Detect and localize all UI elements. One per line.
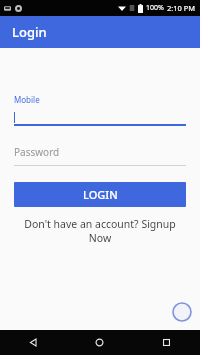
staticText: Password — [14, 145, 60, 159]
staticText: Login — [12, 23, 47, 41]
button[interactable]: Loading — [172, 302, 192, 322]
staticText: Mobile — [14, 94, 40, 105]
button[interactable]: LOGIN — [14, 182, 186, 207]
button[interactable]: Home — [66, 330, 133, 355]
button[interactable]: Mobile — [14, 94, 186, 126]
button[interactable]: Don't have an account? Signup Now — [22, 217, 178, 245]
staticText: LOGIN — [83, 187, 118, 202]
button[interactable]: Back — [0, 330, 66, 355]
staticText: Don't have an account? Signup Now — [22, 217, 178, 245]
button[interactable]: Password — [14, 145, 186, 166]
button[interactable]: Recents — [133, 330, 200, 355]
staticText: 2:10 PM — [167, 3, 196, 13]
staticText: 100% — [146, 3, 164, 13]
